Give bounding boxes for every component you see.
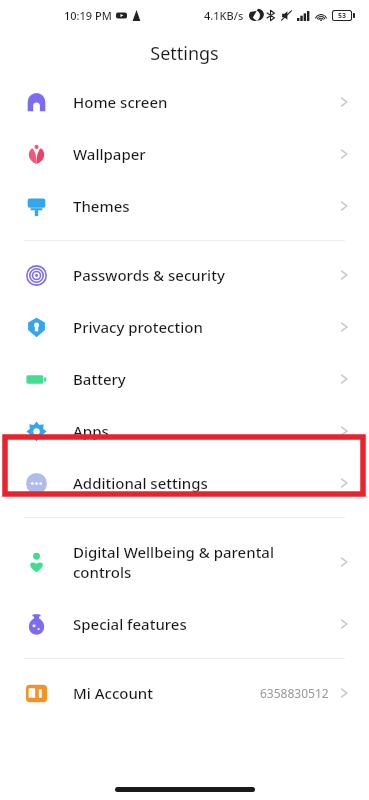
button[interactable]: Home screen [0,76,369,128]
staticText: Settings [150,41,219,66]
button[interactable]: Special features [0,598,369,650]
button[interactable]: Digital Wellbeing & parental controls [0,526,369,598]
staticText: Privacy protection [73,317,337,337]
staticText: Mi Account [73,683,260,703]
button[interactable]: Passwords & security [0,249,369,301]
button[interactable]: Apps [0,405,369,457]
staticText: Additional settings [73,473,337,493]
button[interactable]: Additional settings [0,457,369,509]
button[interactable]: Wallpaper [0,128,369,180]
staticText: Themes [73,196,337,216]
staticText: 4.1KB/s [204,8,244,23]
staticText: Apps [73,421,337,441]
button[interactable]: Privacy protection [0,301,369,353]
staticText: Special features [73,614,337,634]
staticText: 53 [338,11,347,20]
button[interactable]: Themes [0,180,369,232]
button[interactable]: Battery [0,353,369,405]
staticText: 6358830512 [260,685,329,701]
staticText: Wallpaper [73,144,337,164]
staticText: Home screen [73,92,337,112]
staticText: Digital Wellbeing & parental controls [73,542,337,582]
button[interactable]: Mi Account [0,667,369,719]
staticText: Battery [73,369,337,389]
staticText: Passwords & security [73,265,337,285]
staticText: 10:19 PM [64,8,112,23]
